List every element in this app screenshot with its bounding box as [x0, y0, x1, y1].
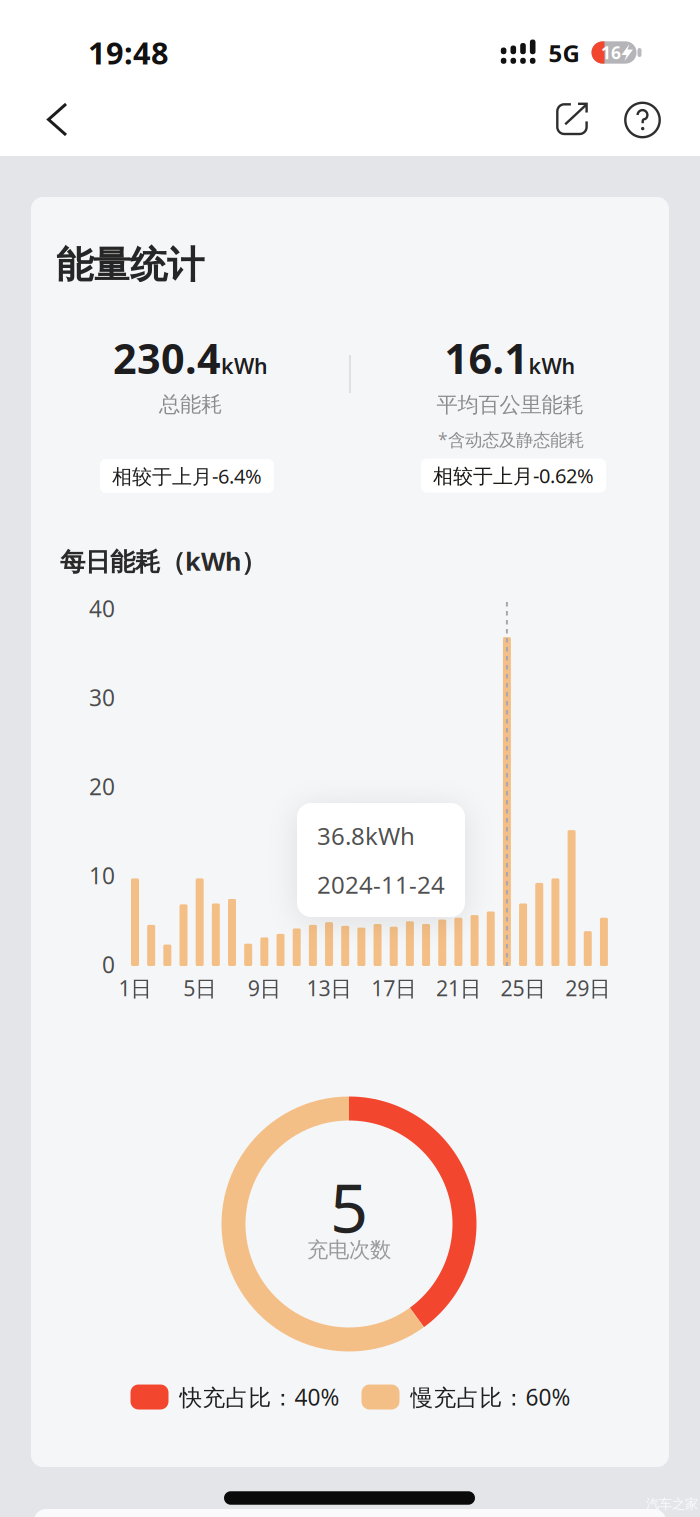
button[interactable] [546, 94, 596, 144]
staticText: 相较于上月-0.62% [433, 462, 594, 489]
staticText: 汽车之家 [646, 1496, 698, 1512]
staticText: 相较于上月-6.4% [112, 463, 262, 489]
staticText: 20 [89, 771, 115, 801]
staticText: 充电次数 [307, 1237, 391, 1263]
staticText: 40 [89, 593, 115, 623]
staticText: 19:48 [88, 32, 169, 73]
staticText: 10 [89, 860, 115, 890]
staticText: 16.1kWh [444, 331, 575, 385]
staticText: 13日 [306, 974, 351, 1002]
staticText: 9日 [248, 974, 281, 1002]
button[interactable] [29, 91, 85, 147]
staticText: 30 [89, 682, 115, 712]
staticText: 230.4kWh [113, 331, 268, 385]
staticText: 17日 [371, 974, 416, 1002]
button[interactable] [617, 95, 667, 145]
staticText: 2024-11-24 [317, 868, 445, 900]
staticText: 25日 [501, 974, 546, 1002]
staticText: 5日 [183, 974, 216, 1002]
staticText: 0 [102, 949, 115, 979]
staticText: 21日 [436, 974, 481, 1002]
staticText: 能量统计 [56, 242, 204, 288]
staticText: 5G [548, 37, 579, 69]
staticText: 每日能耗（kWh） [60, 544, 266, 578]
staticText: *含动态及静态能耗 [438, 428, 584, 451]
staticText: 1日 [118, 974, 151, 1002]
staticText: 快充占比：40% [179, 1382, 339, 1412]
staticText: 总能耗 [159, 391, 222, 418]
staticText: 5 [330, 1163, 368, 1251]
staticText: 慢充占比：60% [410, 1382, 570, 1412]
staticText: 平均百公里能耗 [436, 392, 583, 418]
staticText: 29日 [565, 974, 610, 1002]
staticText: 16 [601, 41, 621, 64]
staticText: 36.8kWh [317, 820, 415, 851]
